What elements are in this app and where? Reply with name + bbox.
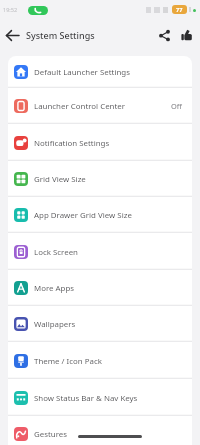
- button[interactable]: Show Status Bar & Nav Keys: [8, 379, 192, 416]
- staticText: App Drawer Grid View Size: [34, 210, 132, 221]
- staticText: System Settings: [26, 29, 95, 41]
- button[interactable]: Grid View Size: [8, 161, 192, 197]
- staticText: Notification Settings: [34, 138, 110, 149]
- button[interactable]: Gestures: [8, 416, 192, 445]
- staticText: 19:52: [3, 6, 18, 13]
- button[interactable]: [2, 26, 22, 44]
- staticText: Off: [171, 101, 182, 111]
- button[interactable]: Notification Settings: [8, 124, 192, 161]
- staticText: More Apps: [34, 283, 75, 294]
- button[interactable]: Default Launcher Settings: [8, 56, 192, 88]
- button[interactable]: Lock Screen: [8, 233, 192, 270]
- button[interactable]: [178, 26, 196, 44]
- staticText: Show Status Bar & Nav Keys: [34, 393, 138, 404]
- staticText: 77: [176, 6, 183, 13]
- staticText: Default Launcher Settings: [34, 67, 130, 78]
- button[interactable]: Launcher Control Center: [8, 88, 192, 124]
- staticText: Grid View Size: [34, 174, 86, 185]
- button[interactable]: More Apps: [8, 270, 192, 306]
- button[interactable]: [28, 6, 48, 15]
- staticText: Lock Screen: [34, 247, 78, 258]
- button[interactable]: [155, 26, 173, 44]
- button[interactable]: Wallpapers: [8, 306, 192, 342]
- staticText: Wallpapers: [34, 319, 76, 330]
- button[interactable]: App Drawer Grid View Size: [8, 197, 192, 233]
- staticText: Gestures: [34, 429, 68, 440]
- button[interactable]: Theme / Icon Pack: [8, 342, 192, 379]
- staticText: Theme / Icon Pack: [34, 356, 102, 367]
- staticText: Launcher Control Center: [34, 101, 126, 112]
